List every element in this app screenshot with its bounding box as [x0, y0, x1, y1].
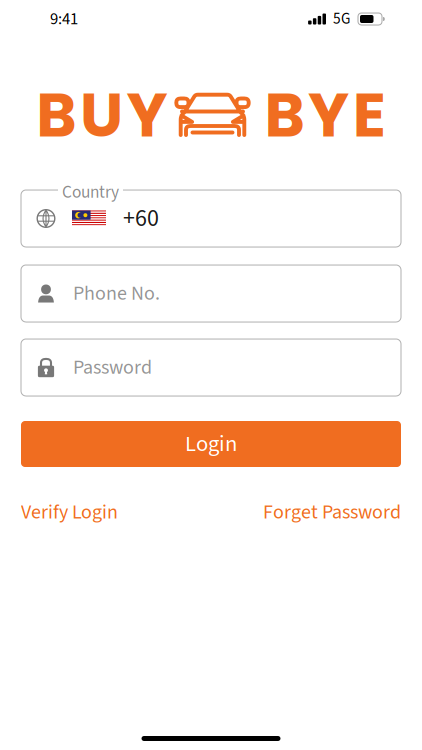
staticText: Forget Password — [263, 498, 401, 526]
button[interactable]: Forget Password — [263, 498, 401, 526]
staticText: BUY — [36, 72, 167, 158]
staticText: 5G — [333, 8, 350, 30]
staticText: 9:41 — [50, 7, 78, 31]
button[interactable]: Verify Login — [21, 498, 118, 526]
button[interactable]: Login — [21, 421, 401, 467]
staticText: Phone No. — [73, 279, 160, 308]
staticText: Country — [62, 180, 119, 205]
staticText: Login — [185, 428, 237, 460]
staticText: +60 — [123, 201, 159, 236]
staticText: BYE — [264, 72, 386, 158]
staticText: Verify Login — [21, 498, 118, 526]
staticText: Password — [73, 353, 152, 382]
